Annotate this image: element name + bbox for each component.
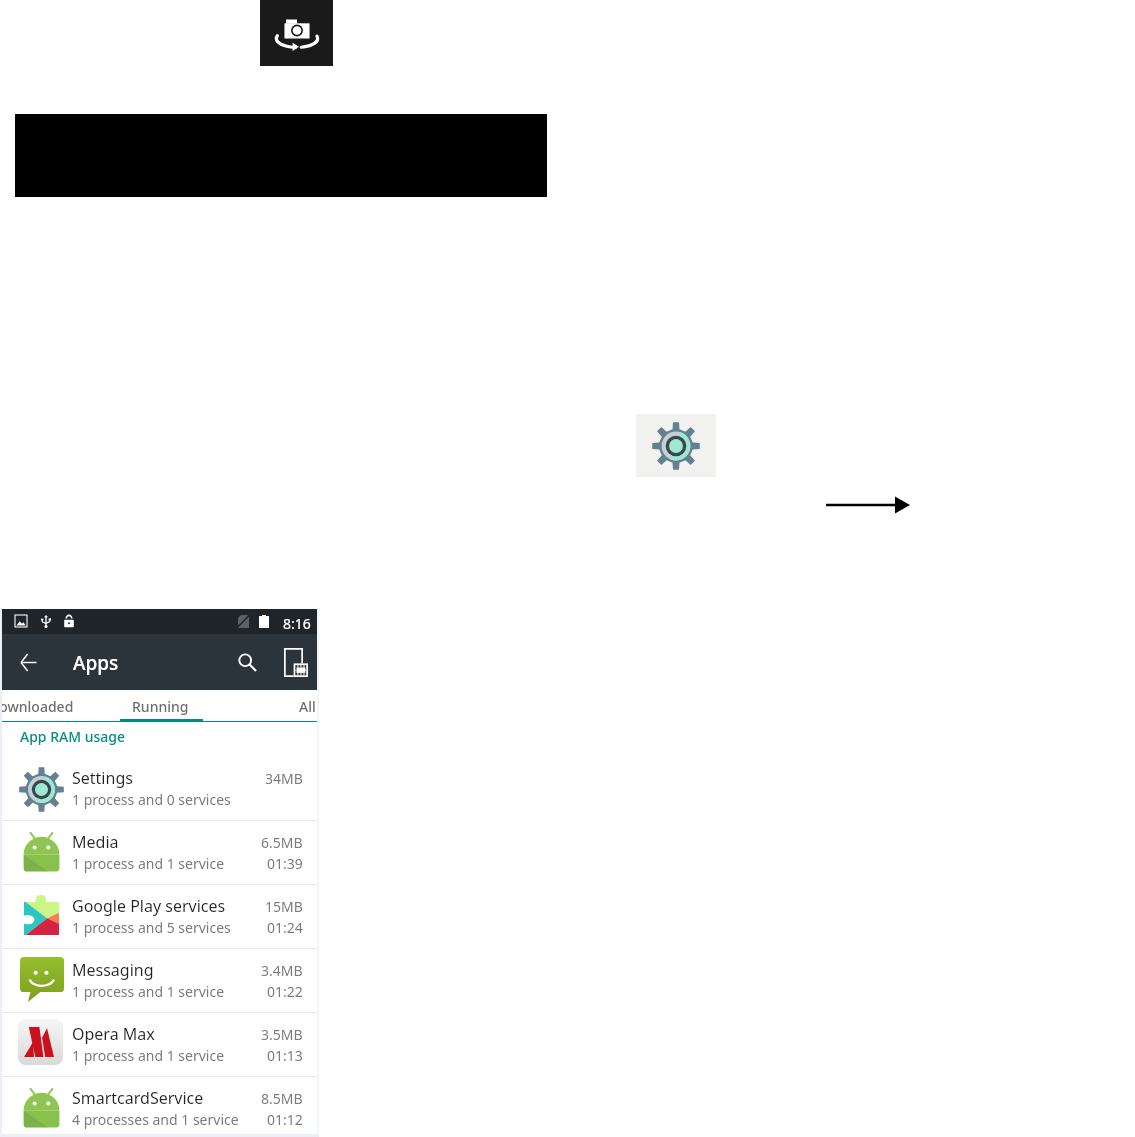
button[interactable]: Settings [636,414,716,477]
staticText: 01:12 [267,1110,303,1129]
staticText: Running [132,697,189,716]
staticText: All [299,697,316,716]
staticText: 1 process and 0 services [72,790,231,809]
button[interactable]: Downloaded [0,690,86,722]
staticText: 34MB [265,769,303,788]
staticText: Downloaded [0,697,74,716]
staticText: 4 processes and 1 service [72,1110,239,1129]
button[interactable]: Google Play services [2,885,318,949]
staticText: 01:13 [267,1046,303,1065]
button[interactable]: Back [4,638,52,686]
staticText: 01:22 [267,982,303,1001]
staticText: Media [72,831,119,853]
staticText: Settings [72,767,133,789]
staticText: 8.5MB [261,1089,303,1108]
staticText: 15MB [265,897,303,916]
staticText: 01:39 [267,854,303,873]
staticText: App RAM usage [20,727,125,746]
staticText: 6.5MB [261,833,303,852]
button[interactable]: Photo sphere camera [260,0,333,66]
button[interactable]: Settings [2,757,318,821]
staticText: 8:16 [283,614,311,633]
button[interactable]: All [252,690,362,722]
button[interactable]: Opera Max [2,1013,318,1077]
staticText: Messaging [72,959,154,981]
button[interactable]: Device memory [274,640,318,684]
button[interactable]: SmartcardService [2,1077,318,1137]
button[interactable]: Messaging [2,949,318,1013]
staticText: Google Play services [72,895,226,917]
staticText: Opera Max [72,1023,155,1045]
button[interactable]: Search [223,638,271,686]
staticText: 3.4MB [261,961,303,980]
staticText: 01:24 [267,918,303,937]
staticText: 1 process and 1 service [72,854,225,873]
staticText: Apps [73,650,119,676]
button[interactable]: Running [105,690,215,722]
staticText: 1 process and 1 service [72,1046,225,1065]
staticText: SmartcardService [72,1087,204,1109]
staticText: 3.5MB [261,1025,303,1044]
staticText: 1 process and 5 services [72,918,231,937]
staticText: 1 process and 1 service [72,982,225,1001]
button[interactable]: Media [2,821,318,885]
